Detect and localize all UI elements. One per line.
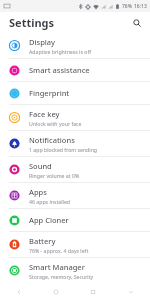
button[interactable]: Search (129, 15, 144, 30)
button[interactable]: Home (37, 284, 74, 300)
button[interactable]: Sound (0, 157, 150, 182)
button[interactable]: App Cloner (0, 209, 150, 231)
staticText: App Cloner (29, 215, 69, 225)
button[interactable]: Smart assistance (0, 59, 150, 81)
staticText: Unlock with your face (29, 120, 82, 127)
staticText: 46 apps installed (29, 198, 71, 205)
button[interactable]: Apps (0, 183, 150, 208)
staticText: 1 app blocked from sending (29, 146, 98, 153)
staticText: Smart Manager (29, 262, 85, 272)
staticText: 76% - approx. 4 days left (29, 247, 89, 254)
staticText: Battery (29, 236, 56, 246)
button[interactable]: Fingerprint (0, 82, 150, 104)
staticText: Fingerprint (29, 88, 70, 98)
button[interactable]: Face key (0, 105, 150, 130)
staticText: Face key (29, 109, 60, 119)
button[interactable]: Notifications (0, 131, 150, 156)
staticText: Ringer volume at 0% (29, 172, 80, 179)
button[interactable]: Battery (0, 232, 150, 257)
button[interactable]: Smart Manager (0, 258, 150, 283)
staticText: Storage, memory, Security (29, 273, 94, 280)
staticText: Sound (29, 161, 52, 171)
staticText: Settings (9, 15, 55, 30)
button[interactable]: Back (0, 284, 37, 300)
staticText: 76% (122, 3, 132, 10)
staticText: Apps (29, 187, 47, 197)
button[interactable]: Recent apps (74, 284, 112, 300)
staticText: Notifications (29, 135, 75, 145)
staticText: Adaptive brightness is off (29, 48, 91, 55)
staticText: Smart assistance (29, 65, 90, 75)
staticText: Display (29, 37, 56, 47)
staticText: 16:13 (134, 3, 147, 10)
button[interactable]: Display (0, 33, 150, 58)
